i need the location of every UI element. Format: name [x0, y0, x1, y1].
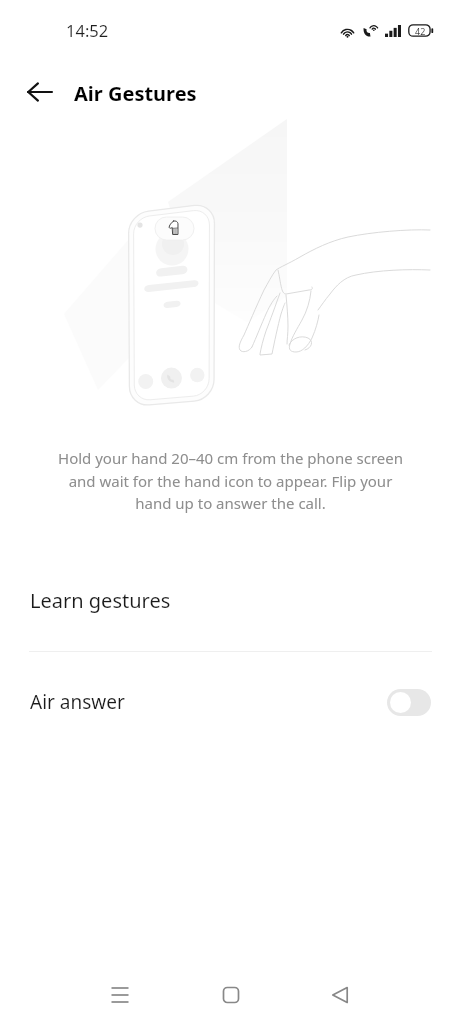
staticText: Learn gestures: [30, 587, 171, 614]
button[interactable]: Air answer: [0, 671, 461, 733]
staticText: 42: [415, 25, 426, 37]
button[interactable]: Home: [207, 971, 255, 1019]
button[interactable]: Back: [316, 971, 364, 1019]
staticText: 14:52: [66, 19, 109, 41]
staticText: Air answer: [30, 689, 125, 715]
button[interactable]: Learn gestures: [0, 570, 461, 630]
staticText: Air Gestures: [74, 80, 197, 107]
button[interactable]: Back: [17, 69, 63, 115]
button[interactable]: Recent apps: [96, 971, 144, 1019]
staticText: Hold your hand 20–40 cm from the phone s…: [56, 448, 405, 513]
